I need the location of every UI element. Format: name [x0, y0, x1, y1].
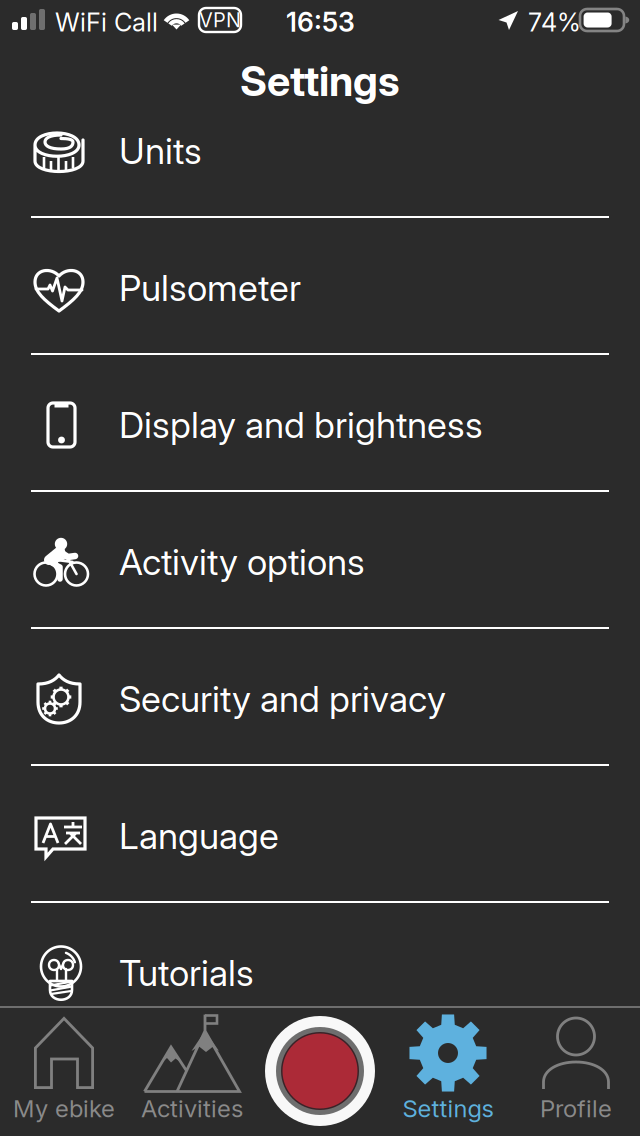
- staticText: Tutorials: [119, 951, 254, 995]
- button[interactable]: Tutorials: [0, 908, 640, 1045]
- staticText: Profile: [540, 1094, 612, 1123]
- staticText: 16:53: [286, 6, 355, 38]
- button[interactable]: Security and privacy: [0, 634, 640, 771]
- button[interactable]: My ebike: [0, 1006, 128, 1136]
- button[interactable]: Language: [0, 771, 640, 908]
- button[interactable]: Activity options: [0, 497, 640, 634]
- staticText: Language: [119, 814, 279, 858]
- staticText: Display and brightness: [119, 403, 483, 447]
- staticText: Activities: [141, 1094, 243, 1123]
- button[interactable]: Display and brightness: [0, 360, 640, 497]
- staticText: Activity options: [119, 540, 365, 584]
- staticText: 74%: [528, 7, 581, 38]
- staticText: VPN: [199, 8, 241, 32]
- button[interactable]: Units: [0, 86, 640, 223]
- staticText: WiFi Call: [55, 7, 158, 38]
- button[interactable]: Record: [264, 1015, 376, 1127]
- staticText: Security and privacy: [119, 677, 446, 721]
- button[interactable]: Settings: [384, 1006, 512, 1136]
- staticText: Units: [119, 129, 202, 173]
- button[interactable]: Pulsometer: [0, 223, 640, 360]
- staticText: My ebike: [13, 1094, 115, 1123]
- staticText: Settings: [402, 1094, 493, 1123]
- button[interactable]: Activities: [128, 1006, 256, 1136]
- staticText: Pulsometer: [119, 266, 301, 310]
- button[interactable]: Profile: [512, 1006, 640, 1136]
- staticText: Settings: [240, 56, 400, 106]
